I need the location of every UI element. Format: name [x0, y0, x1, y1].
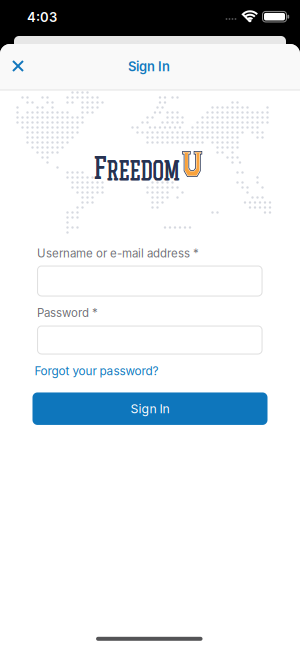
button[interactable]	[37, 265, 263, 296]
staticText: Forgot your password?	[34, 364, 158, 378]
button[interactable]	[37, 325, 263, 354]
staticText: F	[93, 155, 106, 179]
staticText: REEDOM	[106, 159, 180, 179]
staticText: Sign In	[128, 59, 170, 74]
staticText: Password *	[37, 306, 98, 320]
button[interactable]: Sign In	[32, 392, 267, 425]
staticText: F	[93, 155, 106, 179]
staticText: REEDOM	[106, 159, 180, 179]
staticText: F	[94, 155, 107, 179]
button[interactable]: Forgot your password?	[34, 364, 158, 378]
staticText: Sign In	[130, 401, 169, 416]
staticText: 4:03	[27, 9, 57, 25]
staticText: Username or e-mail address *	[37, 246, 199, 260]
staticText: REEDOM	[107, 159, 181, 179]
button[interactable]	[10, 58, 26, 74]
